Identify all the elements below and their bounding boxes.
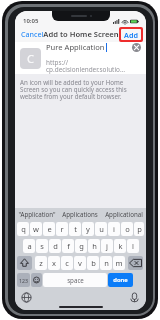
button[interactable]: q — [17, 222, 29, 236]
button[interactable]: p — [134, 222, 144, 236]
staticText: v — [78, 258, 82, 268]
button[interactable]: a — [23, 239, 35, 253]
button[interactable]: space — [43, 273, 107, 287]
staticText: o — [125, 224, 130, 234]
staticText: n — [104, 258, 109, 268]
staticText: a — [27, 241, 32, 251]
staticText: Add — [124, 30, 138, 40]
staticText: An icon will be added to your Home Scree… — [20, 78, 139, 101]
staticText: h — [92, 241, 97, 251]
button[interactable]: j — [101, 239, 113, 253]
staticText: g — [79, 241, 84, 251]
button[interactable]: d — [49, 239, 61, 253]
button[interactable]: u — [95, 222, 107, 236]
button[interactable]: 123 — [17, 273, 30, 287]
button[interactable]: g — [75, 239, 87, 253]
button[interactable]: v — [74, 256, 86, 270]
button[interactable]: k — [114, 239, 126, 253]
button[interactable]: Dictation — [129, 292, 140, 303]
staticText: w — [33, 224, 39, 234]
staticText: e — [47, 224, 52, 234]
staticText: "Application" — [18, 210, 56, 218]
staticText: d — [53, 241, 58, 251]
button[interactable]: c — [61, 256, 73, 270]
button[interactable]: Clear text — [132, 43, 141, 52]
staticText: 10:05 — [23, 17, 39, 25]
staticText: 123 — [19, 277, 28, 284]
button[interactable]: Switch keyboard — [21, 292, 32, 303]
button[interactable]: l — [127, 239, 139, 253]
button[interactable]: i — [108, 222, 120, 236]
staticText: done — [113, 276, 128, 284]
button[interactable]: h — [88, 239, 100, 253]
staticText: p — [137, 224, 142, 234]
button[interactable]: m — [113, 256, 125, 270]
staticText: s — [40, 241, 44, 251]
staticText: q — [21, 224, 26, 234]
button[interactable]: Applications — [58, 208, 102, 220]
staticText: C — [27, 51, 34, 66]
button[interactable]: y — [82, 222, 94, 236]
staticText: k — [118, 241, 123, 251]
staticText: z — [39, 258, 43, 268]
staticText: https://cp.decisionlender.solutio… — [46, 58, 141, 74]
staticText: Pure Application — [46, 42, 105, 52]
button[interactable]: Add — [121, 29, 141, 40]
button[interactable]: t — [69, 222, 81, 236]
staticText: Cancel — [21, 29, 44, 39]
button[interactable]: done — [108, 273, 133, 287]
button[interactable]: w — [30, 222, 42, 236]
button[interactable]: o — [121, 222, 133, 236]
staticText: f — [67, 241, 70, 251]
staticText: x — [52, 258, 56, 268]
staticText: Applicational — [105, 210, 143, 218]
staticText: Add to Home Screen — [43, 29, 119, 39]
button[interactable]: Emoji — [31, 273, 42, 287]
button[interactable]: z — [35, 256, 47, 270]
staticText: m — [115, 258, 123, 268]
staticText: y — [86, 224, 90, 234]
staticText: l — [132, 241, 134, 251]
button[interactable]: Backspace — [128, 256, 143, 270]
button[interactable]: e — [43, 222, 55, 236]
staticText: c — [65, 258, 69, 268]
button[interactable]: r — [56, 222, 68, 236]
staticText: i — [113, 224, 115, 234]
staticText: Applications — [62, 210, 98, 218]
staticText: j — [106, 241, 108, 251]
button[interactable]: f — [62, 239, 74, 253]
staticText: b — [91, 258, 96, 268]
button[interactable]: Shift — [17, 256, 32, 270]
staticText: t — [74, 224, 77, 234]
staticText: r — [60, 224, 64, 234]
button[interactable]: x — [48, 256, 60, 270]
button[interactable]: s — [36, 239, 48, 253]
staticText: u — [99, 224, 104, 234]
button[interactable]: Cancel — [19, 27, 46, 41]
button[interactable]: Applicational — [102, 208, 146, 220]
button[interactable]: b — [87, 256, 99, 270]
button[interactable]: "Application" — [15, 208, 58, 220]
staticText: space — [67, 276, 84, 284]
button[interactable]: n — [100, 256, 112, 270]
